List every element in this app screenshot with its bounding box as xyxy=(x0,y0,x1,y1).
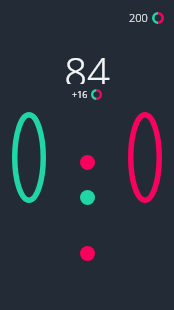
button[interactable]: Coins: 200 xyxy=(127,8,166,27)
staticText: 200 xyxy=(129,10,148,25)
staticText: +16 xyxy=(72,88,88,100)
button[interactable]: Right pink paddle xyxy=(128,112,162,203)
staticText: 84 xyxy=(64,44,110,84)
button[interactable]: Left teal paddle xyxy=(12,112,46,203)
